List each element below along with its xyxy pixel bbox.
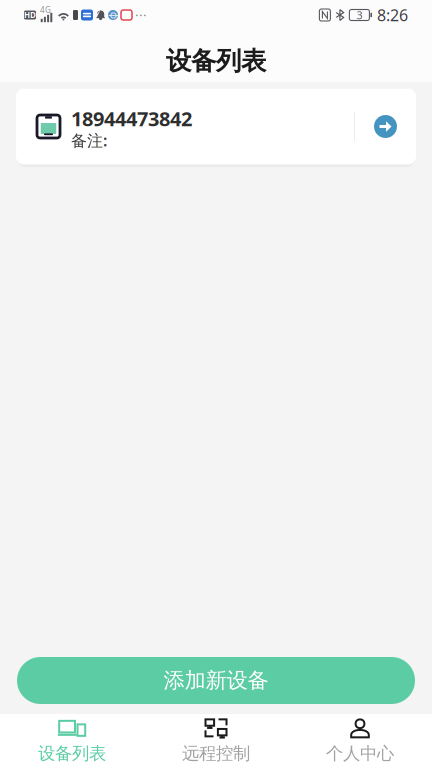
staticText: 备注: xyxy=(71,130,107,151)
staticText: 设备列表 xyxy=(166,45,266,76)
button[interactable]: 18944473842 xyxy=(16,88,416,164)
staticText: ··· xyxy=(135,6,147,24)
button[interactable]: 个人中心 xyxy=(288,714,432,768)
staticText: 18944473842 xyxy=(71,105,192,132)
button[interactable]: 设备列表 xyxy=(0,714,144,768)
staticText: 3 xyxy=(356,8,362,22)
staticText: 个人中心 xyxy=(326,743,394,764)
staticText: 8:26 xyxy=(377,4,408,26)
staticText: HD xyxy=(24,10,36,20)
staticText: 远程控制 xyxy=(182,743,250,764)
staticText: 设备列表 xyxy=(38,743,106,764)
staticText: 4G xyxy=(40,5,51,15)
staticText: 添加新设备 xyxy=(163,667,268,694)
button[interactable]: 添加新设备 xyxy=(17,657,415,704)
button[interactable]: 远程控制 xyxy=(144,714,288,768)
